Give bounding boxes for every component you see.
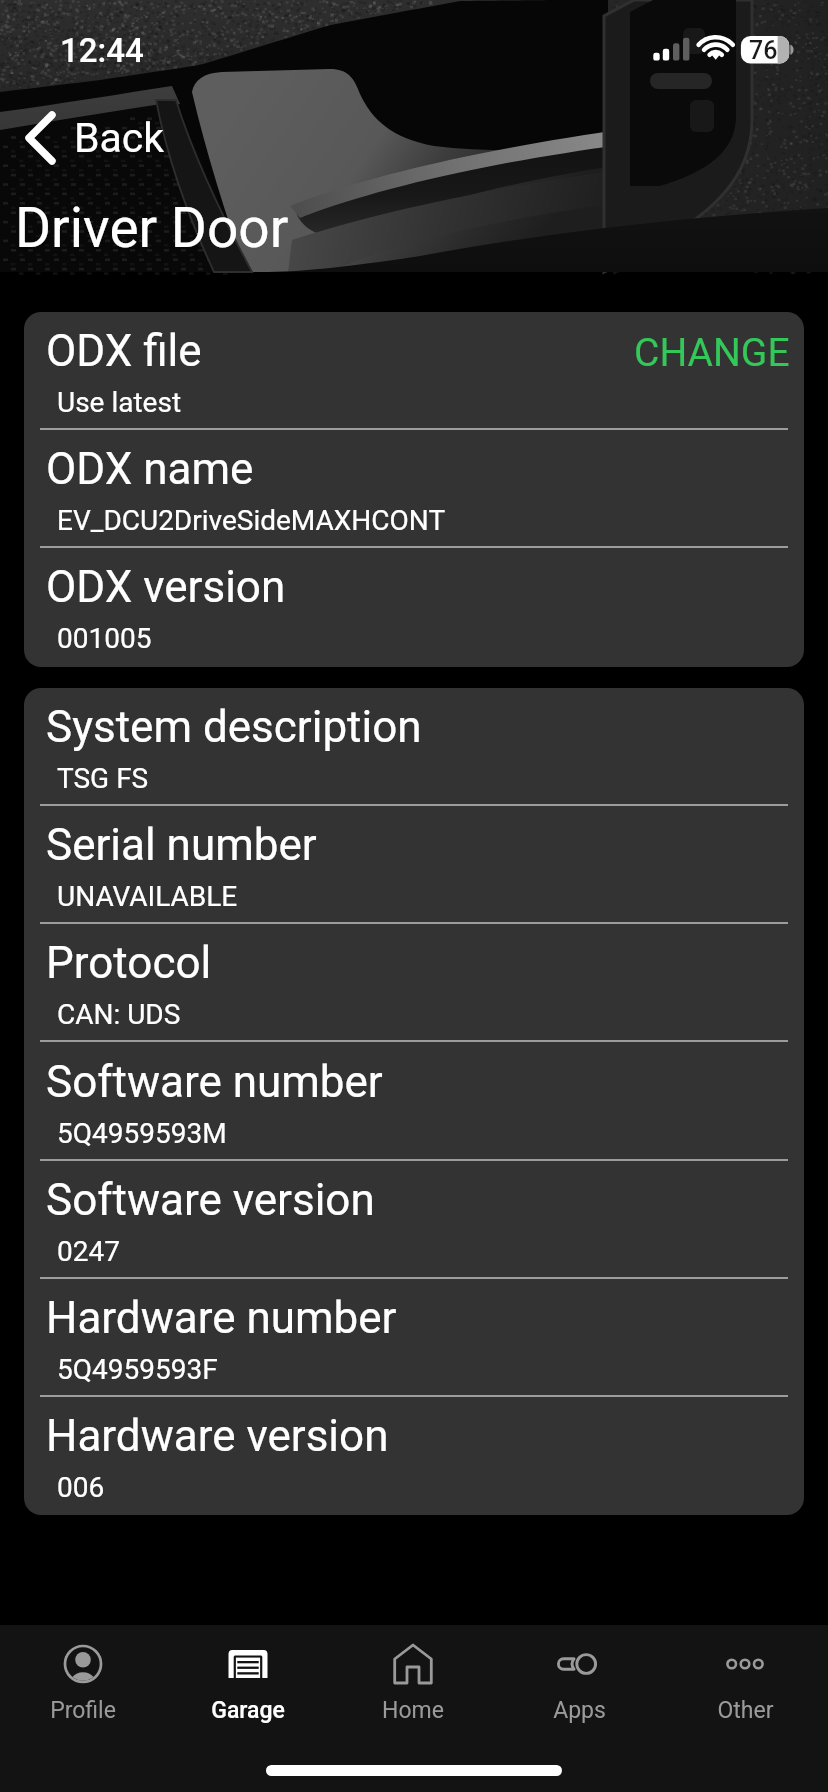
staticText: Home bbox=[382, 1697, 444, 1724]
staticText: Driver Door bbox=[15, 196, 289, 260]
staticText: 5Q4959593F bbox=[57, 1353, 218, 1386]
button[interactable]: Garage bbox=[165, 1625, 330, 1792]
button[interactable]: Back bbox=[24, 108, 165, 168]
staticText: EV_DCU2DriveSideMAXHCONT bbox=[57, 504, 446, 537]
button[interactable]: Apps bbox=[496, 1625, 662, 1792]
staticText: Use latest bbox=[57, 386, 182, 419]
staticText: ODX name bbox=[46, 443, 254, 495]
button[interactable]: Profile bbox=[0, 1625, 165, 1792]
staticText: 001005 bbox=[57, 622, 152, 655]
staticText: TSG FS bbox=[57, 762, 149, 795]
staticText: 006 bbox=[57, 1471, 105, 1504]
button[interactable]: ODX version bbox=[24, 548, 804, 666]
staticText: Profile bbox=[50, 1697, 116, 1724]
button[interactable]: ODX file bbox=[24, 312, 804, 430]
staticText: Hardware version bbox=[46, 1410, 389, 1462]
staticText: Serial number bbox=[46, 819, 317, 871]
staticText: System description bbox=[46, 701, 422, 753]
staticText: 0247 bbox=[57, 1235, 120, 1268]
staticText: ODX version bbox=[46, 561, 286, 613]
staticText: 76 bbox=[749, 36, 778, 65]
staticText: 12:44 bbox=[60, 31, 144, 70]
button[interactable]: Other bbox=[662, 1625, 828, 1792]
staticText: Hardware number bbox=[46, 1292, 397, 1344]
staticText: Garage bbox=[211, 1697, 285, 1724]
staticText: Protocol bbox=[46, 937, 212, 989]
button[interactable]: Home bbox=[330, 1625, 496, 1792]
button[interactable]: Hardware number bbox=[24, 1279, 804, 1397]
staticText: Software version bbox=[46, 1174, 375, 1226]
button[interactable]: ODX name bbox=[24, 430, 804, 548]
other: Status icons bbox=[653, 36, 795, 64]
button[interactable]: System description bbox=[24, 688, 804, 806]
staticText: Back bbox=[74, 114, 165, 162]
button[interactable]: Software number bbox=[24, 1043, 804, 1161]
button[interactable]: Hardware version bbox=[24, 1397, 804, 1515]
button[interactable]: Protocol bbox=[24, 924, 804, 1042]
staticText: CAN: UDS bbox=[57, 998, 181, 1031]
staticText: ODX file bbox=[46, 325, 202, 377]
button[interactable]: CHANGE bbox=[634, 330, 790, 376]
button[interactable]: Software version bbox=[24, 1161, 804, 1279]
button[interactable]: Serial number bbox=[24, 806, 804, 924]
staticText: Apps bbox=[553, 1697, 606, 1724]
staticText: UNAVAILABLE bbox=[57, 880, 238, 913]
other: Back bbox=[24, 112, 56, 164]
staticText: 5Q4959593M bbox=[57, 1117, 227, 1150]
staticText: Software number bbox=[46, 1056, 383, 1108]
staticText: Other bbox=[717, 1697, 774, 1724]
